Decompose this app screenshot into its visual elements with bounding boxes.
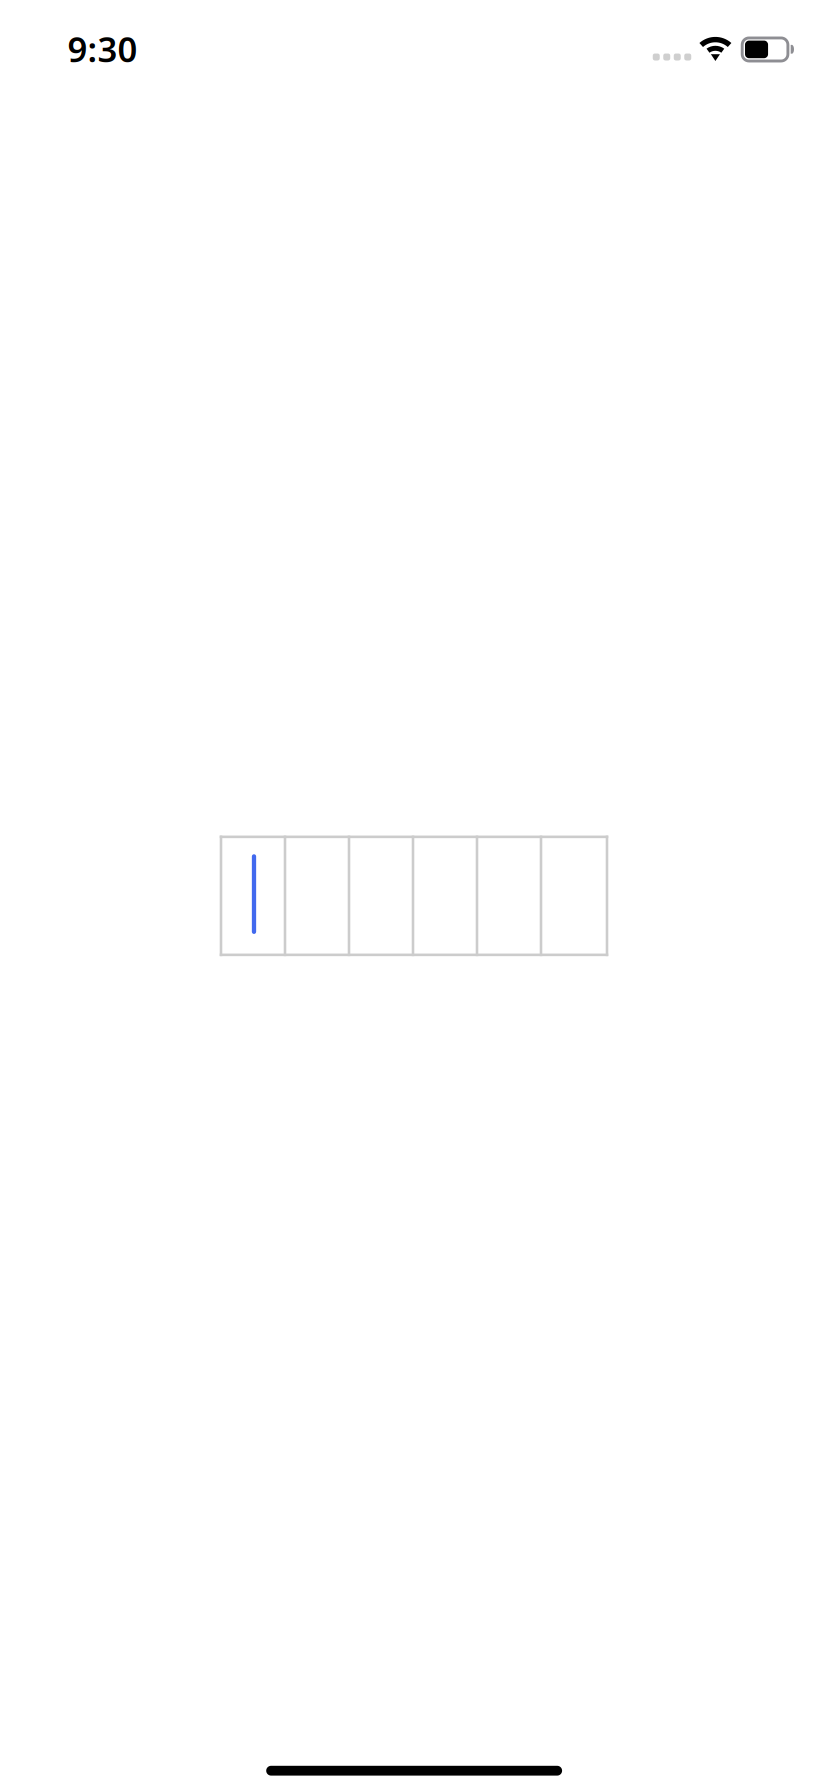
button[interactable]: Digit 2 — [285, 835, 349, 956]
button[interactable]: Digit 1 — [221, 835, 285, 956]
button[interactable]: Digit 5 — [477, 835, 541, 956]
button[interactable]: Digit 4 — [413, 835, 477, 956]
staticText: 9:30 — [67, 26, 137, 72]
button[interactable]: Digit 6 — [541, 835, 607, 956]
button[interactable]: Digit 3 — [349, 835, 413, 956]
